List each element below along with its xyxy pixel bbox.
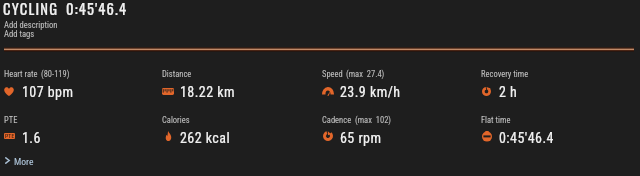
button[interactable]: Add description xyxy=(4,20,58,30)
staticText: 0:45'46.4 xyxy=(499,130,554,146)
button[interactable]: Add tags xyxy=(4,29,35,39)
staticText: Flat time xyxy=(481,115,511,125)
button[interactable] xyxy=(322,112,472,142)
staticText: Recovery time xyxy=(481,69,529,79)
staticText: Add description xyxy=(4,20,58,30)
button[interactable] xyxy=(162,112,312,142)
staticText: Speed xyxy=(322,69,343,79)
button[interactable] xyxy=(4,112,154,142)
button[interactable] xyxy=(481,66,631,96)
staticText: (max 27.4) xyxy=(346,69,385,79)
staticText: 18.22 km xyxy=(180,84,235,100)
staticText: More xyxy=(14,156,34,167)
staticText: 65 rpm xyxy=(340,130,382,146)
button[interactable] xyxy=(322,66,472,96)
button[interactable] xyxy=(481,112,631,142)
staticText: PTE xyxy=(5,133,15,139)
staticText: (max 102) xyxy=(355,115,392,125)
staticText: CYCLING xyxy=(3,0,59,20)
staticText: 23.9 km/h xyxy=(340,84,401,100)
staticText: Cadence xyxy=(322,115,352,125)
staticText: (80-119) xyxy=(41,69,70,79)
button[interactable] xyxy=(4,66,154,96)
button[interactable] xyxy=(2,153,42,169)
staticText: 0:45'46.4 xyxy=(66,0,128,20)
staticText: 2 h xyxy=(499,84,518,100)
staticText: 107 bpm xyxy=(22,84,74,100)
staticText: 1.6 xyxy=(22,130,41,146)
staticText: Add tags xyxy=(4,29,35,39)
staticText: Distance xyxy=(162,69,192,79)
staticText: 262 kcal xyxy=(180,130,231,146)
staticText: Calories xyxy=(162,115,190,125)
staticText: PTE xyxy=(4,115,18,125)
button[interactable] xyxy=(162,66,312,96)
staticText: Heart rate xyxy=(4,69,38,79)
